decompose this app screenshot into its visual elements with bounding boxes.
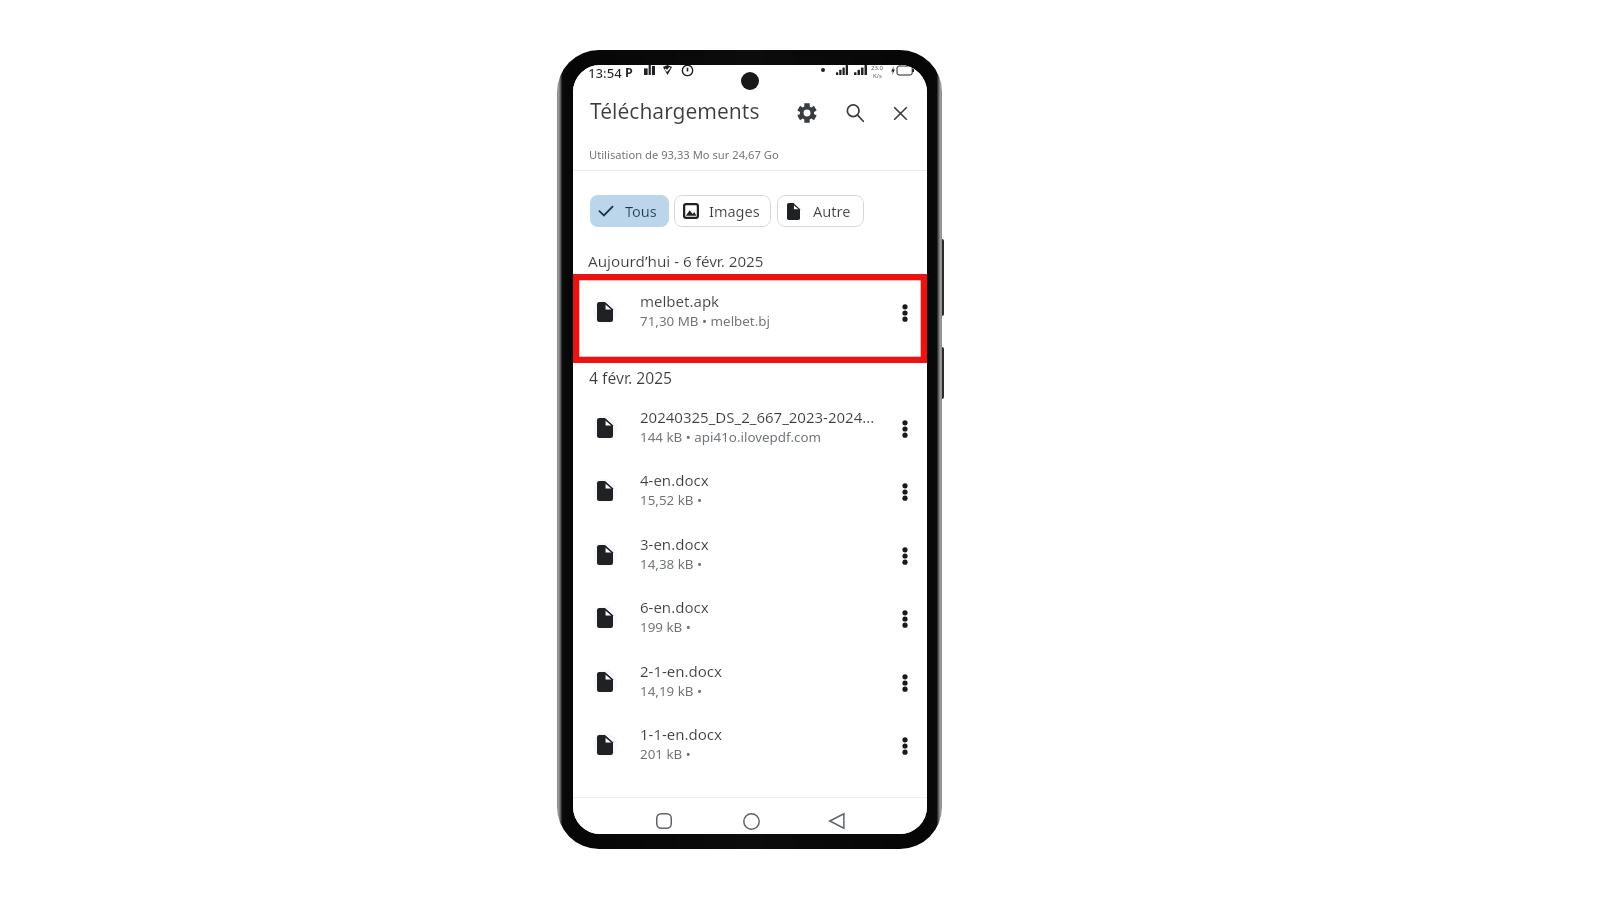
button[interactable]: Home <box>736 806 766 834</box>
button[interactable]: Recents <box>649 806 679 834</box>
staticText: 13:54 <box>588 65 622 78</box>
button[interactable]: Images <box>674 195 771 227</box>
staticText: 4 févr. 2025 <box>589 367 673 388</box>
staticText: 199 kB • <box>640 618 888 636</box>
staticText: melbet.apk <box>640 291 888 311</box>
button[interactable]: Back <box>822 806 852 834</box>
staticText: 20240325_DS_2_667_2023-2024... <box>640 407 888 427</box>
staticText: Aujourd’hui - 6 févr. 2025 <box>588 251 764 272</box>
button[interactable]: melbet.apk <box>573 284 927 340</box>
staticText: 15,52 kB • <box>640 491 888 509</box>
staticText: 14,38 kB • <box>640 555 888 573</box>
staticText: Tous <box>625 201 657 221</box>
staticText: 3-en.docx <box>640 534 888 554</box>
button[interactable]: 4-en.docx <box>573 463 927 519</box>
staticText: 1-1-en.docx <box>640 724 888 744</box>
button[interactable]: Close <box>887 100 914 127</box>
button[interactable]: Search <box>841 99 868 126</box>
button[interactable]: 3-en.docx <box>573 527 927 583</box>
staticText: 23.0 <box>871 65 883 72</box>
button[interactable]: Autre <box>777 195 864 227</box>
button[interactable]: 20240325_DS_2_667_2023-2024... <box>573 400 927 456</box>
staticText: 4-en.docx <box>640 470 888 490</box>
button[interactable]: 1-1-en.docx <box>573 717 927 773</box>
button[interactable]: More options <box>890 668 920 698</box>
staticText: K/s <box>873 72 882 78</box>
staticText: 2-1-en.docx <box>640 661 888 681</box>
staticText: Images <box>709 201 760 221</box>
button[interactable]: 6-en.docx <box>573 590 927 646</box>
staticText: 14,19 kB • <box>640 682 888 700</box>
staticText: 201 kB • <box>640 745 888 763</box>
button[interactable]: More options <box>890 604 920 634</box>
staticText: Autre <box>813 201 851 221</box>
staticText: Utilisation de 93,33 Mo sur 24,67 Go <box>589 147 779 162</box>
button[interactable]: More options <box>890 477 920 507</box>
button[interactable]: Tous <box>590 195 669 227</box>
button[interactable]: More options <box>890 541 920 571</box>
staticText: 144 kB • api41o.ilovepdf.com <box>640 428 888 446</box>
button[interactable]: More options <box>890 731 920 761</box>
staticText: 71,30 MB • melbet.bj <box>640 312 888 330</box>
button[interactable]: More options <box>890 298 920 328</box>
button[interactable]: More options <box>890 414 920 444</box>
button[interactable]: Settings <box>793 99 820 126</box>
staticText: Téléchargements <box>590 97 760 126</box>
staticText: 6-en.docx <box>640 597 888 617</box>
button[interactable]: 2-1-en.docx <box>573 654 927 710</box>
staticText: P <box>625 65 633 78</box>
